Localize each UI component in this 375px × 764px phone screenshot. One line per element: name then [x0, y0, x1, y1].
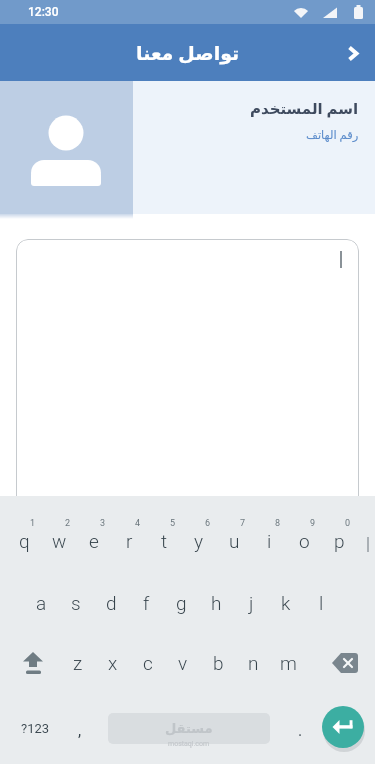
- staticText: اسم المستخدم: [250, 98, 359, 118]
- button[interactable]: [336, 36, 370, 70]
- staticText: t: [161, 530, 168, 552]
- button[interactable]: .: [283, 704, 317, 756]
- button[interactable]: [13, 643, 53, 683]
- button[interactable]: [16, 239, 359, 511]
- staticText: 6: [205, 518, 211, 529]
- staticText: j: [249, 592, 254, 614]
- button[interactable]: u: [217, 515, 251, 567]
- staticText: 4: [135, 518, 141, 529]
- staticText: b: [213, 652, 224, 674]
- button[interactable]: g: [164, 577, 198, 629]
- staticText: e: [89, 530, 99, 552]
- button[interactable]: z: [61, 637, 95, 689]
- staticText: r: [126, 530, 133, 552]
- staticText: تواصل معنا: [136, 40, 240, 66]
- staticText: 5: [170, 518, 176, 529]
- button[interactable]: مستقل: [108, 713, 270, 744]
- button[interactable]: q: [7, 515, 41, 567]
- button[interactable]: m: [271, 637, 305, 689]
- staticText: o: [299, 530, 310, 552]
- staticText: 9: [310, 518, 316, 529]
- button[interactable]: f: [129, 577, 163, 629]
- staticText: q: [19, 530, 30, 552]
- staticText: mostaql.com: [168, 740, 210, 748]
- staticText: 2: [65, 518, 71, 529]
- staticText: s: [71, 592, 81, 614]
- button[interactable]: w: [42, 515, 76, 567]
- staticText: x: [108, 652, 118, 674]
- staticText: n: [248, 652, 259, 674]
- staticText: c: [143, 652, 153, 674]
- staticText: .: [298, 721, 303, 740]
- button[interactable]: h: [199, 577, 233, 629]
- button[interactable]: v: [166, 637, 200, 689]
- staticText: 3: [100, 518, 106, 529]
- button[interactable]: r: [112, 515, 146, 567]
- staticText: ,: [78, 721, 82, 740]
- staticText: i: [267, 530, 272, 552]
- staticText: u: [229, 530, 240, 552]
- button[interactable]: b: [201, 637, 235, 689]
- button[interactable]: c: [131, 637, 165, 689]
- staticText: g: [176, 592, 187, 614]
- button[interactable]: o: [287, 515, 321, 567]
- staticText: v: [178, 652, 188, 674]
- staticText: 8: [275, 518, 281, 529]
- button[interactable]: [322, 706, 364, 748]
- button[interactable]: k: [269, 577, 303, 629]
- button[interactable]: p: [322, 515, 356, 567]
- staticText: 12:30: [28, 5, 59, 19]
- staticText: h: [211, 592, 222, 614]
- button[interactable]: l: [304, 577, 338, 629]
- staticText: 7: [240, 518, 246, 529]
- button[interactable]: y: [182, 515, 216, 567]
- button[interactable]: a: [24, 577, 58, 629]
- staticText: w: [52, 530, 67, 552]
- staticText: 1: [30, 518, 36, 529]
- button[interactable]: t: [147, 515, 181, 567]
- button[interactable]: s: [59, 577, 93, 629]
- staticText: f: [143, 592, 150, 614]
- staticText: مستقل: [165, 721, 213, 736]
- button[interactable]: ?123: [18, 702, 52, 754]
- staticText: 0: [345, 518, 351, 529]
- button[interactable]: d: [94, 577, 128, 629]
- staticText: y: [194, 530, 204, 552]
- staticText: l: [319, 592, 324, 614]
- button[interactable]: x: [96, 637, 130, 689]
- button[interactable]: [325, 643, 365, 683]
- staticText: a: [36, 592, 47, 614]
- staticText: m: [280, 652, 297, 674]
- button[interactable]: j: [234, 577, 268, 629]
- staticText: z: [73, 652, 83, 674]
- button[interactable]: n: [236, 637, 270, 689]
- button[interactable]: ,: [63, 704, 97, 756]
- button[interactable]: e: [77, 515, 111, 567]
- staticText: p: [334, 530, 345, 552]
- staticText: ?123: [21, 721, 50, 736]
- button[interactable]: i: [252, 515, 286, 567]
- staticText: k: [281, 592, 291, 614]
- staticText: d: [106, 592, 117, 614]
- staticText: رقم الهاتف: [306, 127, 359, 143]
